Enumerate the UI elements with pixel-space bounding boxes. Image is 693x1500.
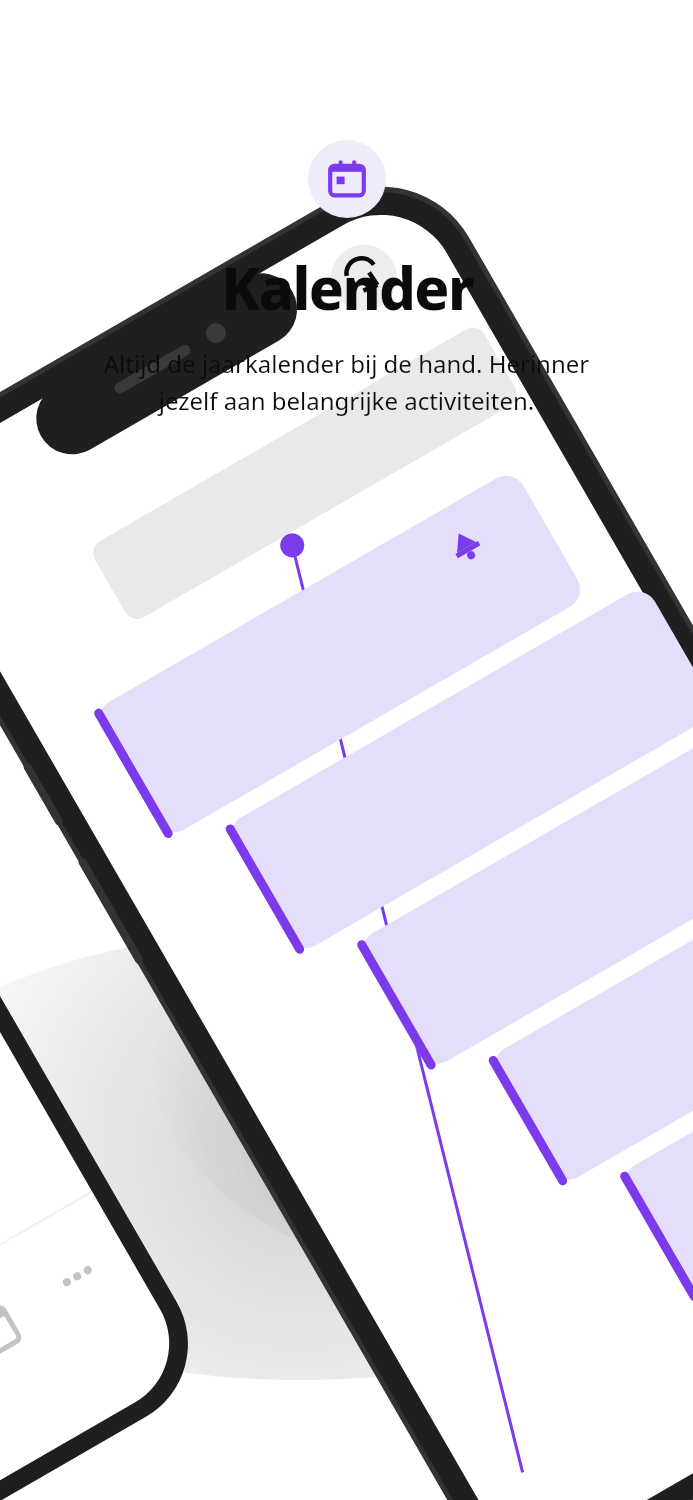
- staticText: Altijd de jaarkalender bij de hand. Heri…: [40, 347, 653, 417]
- button[interactable]: Kalender: [308, 140, 386, 218]
- staticText: Kalender: [221, 248, 473, 327]
